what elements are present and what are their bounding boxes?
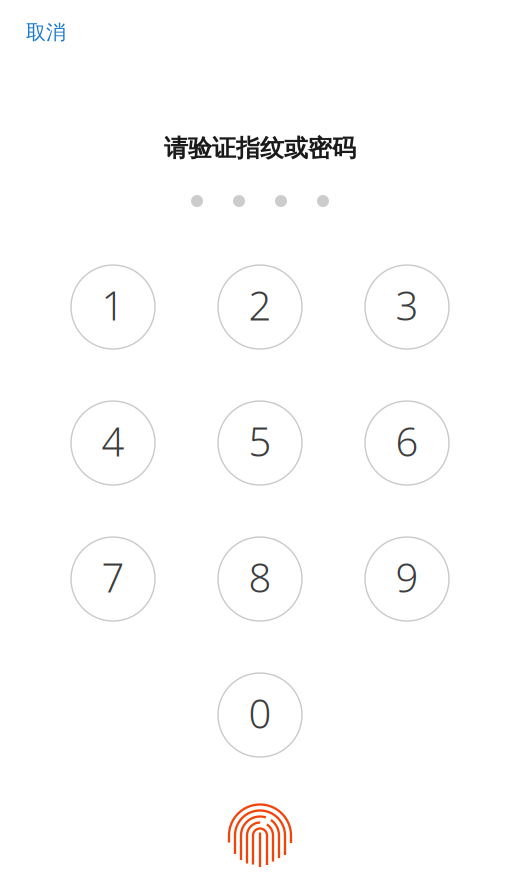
button[interactable]: 7: [71, 537, 155, 621]
button[interactable]: 1: [71, 265, 155, 349]
staticText: 取消: [26, 20, 66, 45]
button[interactable]: 3: [365, 265, 449, 349]
staticText: 9: [395, 550, 418, 604]
staticText: 6: [395, 414, 418, 468]
staticText: 8: [248, 550, 271, 604]
staticText: 7: [101, 550, 124, 604]
button[interactable]: 取消: [18, 14, 74, 51]
staticText: 4: [101, 414, 124, 468]
button[interactable]: Touch ID: [227, 801, 293, 867]
button[interactable]: 9: [365, 537, 449, 621]
staticText: 1: [101, 278, 124, 332]
staticText: 3: [395, 278, 418, 332]
button[interactable]: 5: [218, 401, 302, 485]
staticText: 2: [248, 278, 271, 332]
staticText: 5: [248, 414, 271, 468]
button[interactable]: 4: [71, 401, 155, 485]
staticText: 请验证指纹或密码: [164, 134, 356, 163]
staticText: 0: [248, 686, 271, 740]
button[interactable]: 6: [365, 401, 449, 485]
button[interactable]: 8: [218, 537, 302, 621]
button[interactable]: 2: [218, 265, 302, 349]
button[interactable]: 0: [218, 673, 302, 757]
